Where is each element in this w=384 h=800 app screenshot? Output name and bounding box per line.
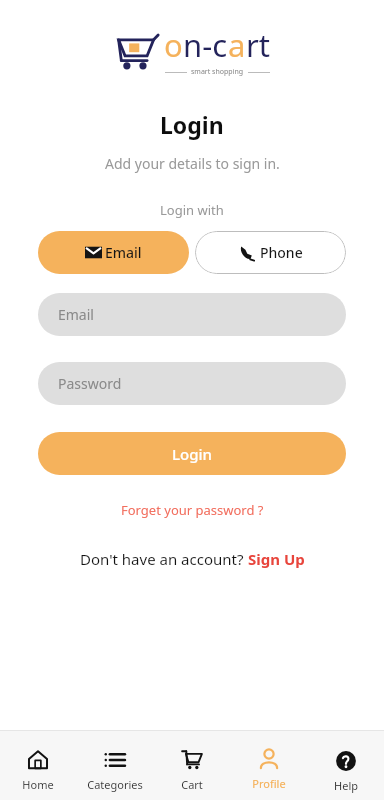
staticText: Login	[172, 444, 212, 464]
staticText: Categories	[87, 777, 143, 792]
staticText: Email	[58, 305, 94, 324]
staticText: Forget your password ?	[121, 501, 264, 519]
button[interactable]: Categories	[76, 731, 153, 800]
staticText: Phone	[260, 243, 303, 262]
button[interactable]: Login	[38, 432, 346, 475]
button[interactable]: Home	[0, 731, 76, 800]
staticText: Login	[160, 109, 224, 140]
staticText: smart shopping	[191, 67, 244, 77]
staticText: Home	[22, 777, 54, 792]
staticText: Cart	[181, 777, 203, 792]
staticText: Password	[58, 374, 122, 393]
button[interactable]: Profile	[230, 731, 307, 800]
button[interactable]: Cart	[153, 731, 230, 800]
staticText: Add your details to sign in.	[105, 154, 280, 173]
button[interactable]: Password	[38, 362, 346, 405]
button[interactable]: Help	[307, 731, 384, 800]
button[interactable]: Email	[38, 231, 189, 274]
button[interactable]: Forget your password ?	[115, 499, 270, 521]
staticText: a	[228, 24, 246, 66]
staticText: Sign Up	[248, 549, 305, 569]
button[interactable]: Sign Up	[248, 549, 305, 569]
staticText: rt	[246, 24, 270, 66]
staticText: Login with	[160, 201, 224, 219]
staticText: o	[164, 24, 183, 66]
staticText: Profile	[252, 776, 286, 791]
staticText: Help	[334, 778, 358, 793]
button[interactable]: Phone	[195, 231, 346, 274]
staticText: Don't have an account?	[80, 549, 248, 569]
staticText: n-c	[183, 24, 228, 66]
staticText: Email	[105, 243, 142, 262]
button[interactable]: Email	[38, 293, 346, 336]
